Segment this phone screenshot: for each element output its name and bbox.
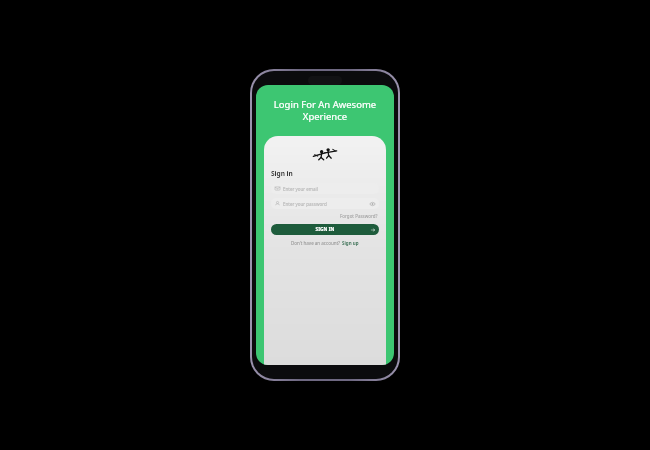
staticText: Sign up [342, 240, 359, 246]
other: Show password [370, 202, 375, 206]
staticText: Enter your password [283, 201, 370, 207]
staticText: Login For An Awesome Xperience [256, 98, 394, 123]
button[interactable]: SIGN IN [271, 224, 379, 235]
staticText: Sign in [271, 169, 379, 178]
button[interactable]: Enter your password [271, 198, 379, 209]
button[interactable]: Don't have an account? [271, 240, 379, 246]
button[interactable]: Forgot Password? [339, 212, 379, 220]
button[interactable]: Enter your email [271, 183, 379, 194]
staticText: SIGN IN [271, 226, 379, 233]
staticText: Enter your email [283, 186, 375, 192]
staticText: Don't have an account? [291, 240, 342, 246]
